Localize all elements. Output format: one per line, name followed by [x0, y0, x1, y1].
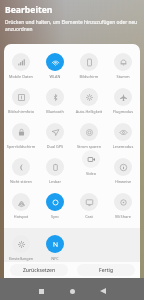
button[interactable]: Lesbar — [38, 150, 72, 185]
staticText: WLAN — [38, 74, 72, 79]
staticText: Fertig — [99, 267, 113, 274]
button[interactable]: Stumm — [106, 45, 140, 80]
staticText: Mobile Daten — [4, 74, 38, 79]
staticText: Nicht stören — [4, 179, 38, 184]
staticText: Zurücksetzen — [23, 267, 56, 274]
staticText: Bluetooth — [38, 109, 72, 114]
staticText: Auto-Helligkeit — [72, 109, 106, 114]
staticText: Hinweise — [106, 179, 140, 184]
button[interactable]: Bildschirmfoto — [4, 80, 38, 115]
button[interactable]: Sync — [38, 185, 72, 220]
staticText: Hotspot — [4, 214, 38, 219]
button[interactable]: WLAN — [38, 45, 72, 80]
button[interactable]: Sperrbildschirm — [4, 115, 38, 150]
button[interactable]: Hotspot — [4, 185, 38, 220]
staticText: Strom sparen — [72, 144, 106, 149]
button[interactable]: Bluetooth — [38, 80, 72, 115]
staticText: Sync — [38, 214, 72, 219]
button[interactable]: Flugmodus — [106, 80, 140, 115]
staticText: Stumm — [106, 74, 140, 79]
button[interactable]: Mobile Daten — [4, 45, 38, 80]
button[interactable]: Dual GPS — [38, 115, 72, 150]
button[interactable]: Bildschirm — [72, 45, 106, 80]
staticText: Bildschirmfoto — [4, 109, 38, 114]
staticText: Bearbeiten — [5, 4, 53, 16]
staticText: NFC — [38, 256, 72, 261]
button[interactable]: Recents — [35, 285, 47, 297]
button[interactable]: NFC — [38, 227, 72, 262]
staticText: Bildschirm — [72, 74, 106, 79]
button[interactable]: Nicht stören — [4, 150, 38, 185]
button[interactable]: Mi Share — [106, 185, 140, 220]
staticText: Einstellungen — [4, 256, 38, 261]
staticText: Flugmodus — [106, 109, 140, 114]
staticText: Dual GPS — [38, 144, 72, 149]
button[interactable]: Hinweise — [106, 150, 140, 185]
button[interactable]: Auto-Helligkeit — [72, 80, 106, 115]
staticText: Lesbar — [38, 179, 72, 184]
button[interactable]: Zurücksetzen — [10, 264, 68, 276]
button[interactable]: Strom sparen — [72, 115, 106, 150]
button[interactable]: Lesemodus — [106, 115, 140, 150]
button[interactable]: Fertig — [77, 264, 135, 276]
staticText: Cast — [72, 214, 106, 219]
button[interactable]: Back — [97, 285, 109, 297]
button[interactable]: Video — [74, 142, 108, 177]
button[interactable]: Cast — [72, 185, 106, 220]
staticText: Drücken und halten, um Elemente hinzuzuf… — [5, 19, 138, 33]
staticText: Video — [74, 171, 108, 176]
button[interactable]: Einstellungen — [4, 227, 38, 262]
staticText: Sperrbildschirm — [4, 144, 38, 149]
staticText: Mi Share — [106, 214, 140, 219]
staticText: Lesemodus — [106, 144, 140, 149]
button[interactable]: Home — [66, 285, 78, 297]
